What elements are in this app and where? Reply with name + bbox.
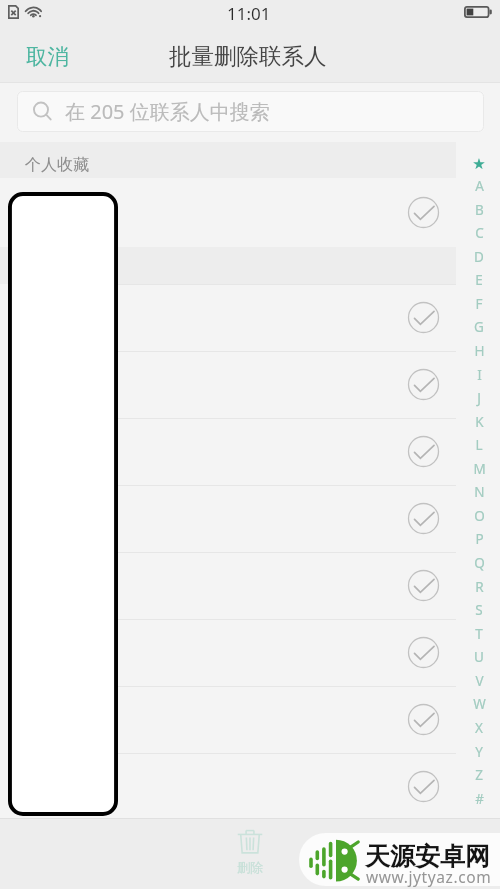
button[interactable]: M — [458, 457, 500, 481]
staticText: www.jytyaz.com — [366, 866, 492, 887]
button[interactable]: K — [458, 410, 500, 434]
staticText: 批量删除联系人 — [169, 42, 327, 70]
staticText: Z — [475, 766, 483, 784]
staticText: R — [475, 578, 484, 596]
button[interactable]: I — [458, 363, 500, 387]
staticText: V — [475, 672, 484, 690]
staticText: I — [477, 366, 482, 384]
button[interactable]: Z — [458, 763, 500, 787]
button[interactable]: 在 205 位联系人中搜索 — [17, 91, 484, 132]
button[interactable]: B — [458, 198, 500, 222]
button[interactable]: W — [458, 692, 500, 716]
staticText: 天源安卓网 — [365, 841, 490, 872]
button[interactable]: 取消 — [0, 33, 87, 80]
staticText: Y — [475, 743, 483, 761]
staticText: G — [474, 318, 484, 336]
staticText: N — [474, 483, 485, 501]
button[interactable]: P — [458, 527, 500, 551]
button[interactable]: G — [458, 315, 500, 339]
button[interactable]: A — [458, 174, 500, 198]
button[interactable] — [0, 686, 500, 753]
staticText: S — [475, 601, 483, 619]
button[interactable]: O — [458, 504, 500, 528]
button[interactable] — [0, 619, 500, 686]
staticText: U — [474, 648, 484, 666]
button[interactable] — [0, 418, 500, 485]
button[interactable] — [0, 753, 500, 820]
button[interactable]: F — [458, 292, 500, 316]
staticText: A — [475, 177, 484, 195]
staticText: K — [475, 413, 484, 431]
staticText: 个人收藏 — [25, 155, 89, 175]
button[interactable]: # — [458, 787, 500, 811]
button[interactable] — [0, 178, 500, 247]
staticText: L — [475, 436, 483, 454]
staticText: 取消 — [26, 43, 69, 70]
button[interactable]: S — [458, 598, 500, 622]
staticText: B — [475, 201, 484, 219]
button[interactable]: H — [458, 339, 500, 363]
staticText: 11:01 — [227, 2, 271, 25]
staticText: E — [475, 271, 483, 289]
staticText: Q — [474, 554, 485, 572]
button[interactable]: E — [458, 268, 500, 292]
button[interactable]: R — [458, 575, 500, 599]
staticText: 在 205 位联系人中搜索 — [65, 98, 270, 125]
staticText: # — [475, 790, 484, 808]
button[interactable]: 删除 — [225, 829, 275, 875]
button[interactable]: J — [458, 386, 500, 410]
staticText: ★ — [472, 155, 486, 172]
button[interactable]: X — [458, 716, 500, 740]
button[interactable] — [0, 485, 500, 552]
button[interactable]: L — [458, 433, 500, 457]
button[interactable]: ★ — [458, 151, 500, 175]
staticText: H — [474, 342, 485, 360]
staticText: F — [475, 295, 483, 313]
button[interactable]: Q — [458, 551, 500, 575]
staticText: C — [475, 224, 484, 242]
button[interactable] — [0, 284, 500, 351]
staticText: O — [474, 507, 485, 525]
button[interactable]: C — [458, 221, 500, 245]
button[interactable]: D — [458, 245, 500, 269]
button[interactable] — [0, 351, 500, 418]
staticText: X — [475, 719, 483, 737]
button[interactable]: T — [458, 622, 500, 646]
staticText: M — [473, 460, 486, 478]
button[interactable] — [0, 552, 500, 619]
staticText: J — [477, 389, 481, 407]
staticText: D — [474, 248, 484, 266]
staticText: W — [473, 695, 486, 713]
staticText: 删除 — [237, 859, 263, 875]
button[interactable]: Y — [458, 740, 500, 764]
button[interactable]: U — [458, 645, 500, 669]
staticText: T — [475, 625, 483, 643]
staticText: P — [475, 530, 484, 548]
button[interactable]: V — [458, 669, 500, 693]
button[interactable]: N — [458, 480, 500, 504]
